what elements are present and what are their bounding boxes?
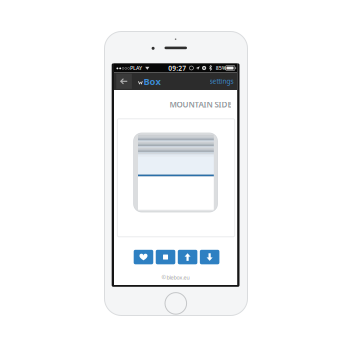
button[interactable]: Stop xyxy=(156,250,175,264)
button[interactable]: Up xyxy=(178,250,197,264)
button[interactable]: Back xyxy=(116,74,132,89)
button[interactable]: wBox xyxy=(138,77,166,86)
staticText: © blebox.eu xyxy=(162,274,190,281)
staticText: settings xyxy=(209,77,233,86)
button[interactable]: settings xyxy=(206,76,233,86)
staticText: PLAY xyxy=(130,64,142,72)
staticText: Box xyxy=(143,75,160,88)
staticText: MOUNTAIN SIDE xyxy=(169,99,231,110)
staticText: 09:27 xyxy=(168,64,186,73)
staticText: 85% xyxy=(216,64,227,72)
button[interactable]: Down xyxy=(200,250,219,264)
button[interactable]: Favourite xyxy=(134,250,153,264)
